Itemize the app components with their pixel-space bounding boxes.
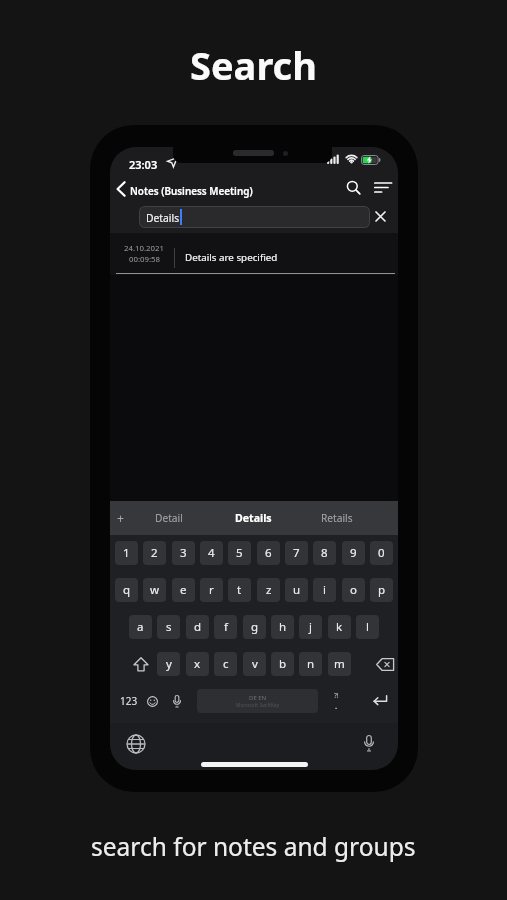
staticText: s [166, 619, 172, 635]
button[interactable]: q [115, 578, 138, 602]
staticText: a [137, 619, 144, 635]
button[interactable]: m [328, 652, 351, 676]
staticText: 8 [321, 545, 328, 561]
button[interactable]: r [200, 578, 223, 602]
staticText: g [251, 619, 259, 635]
button[interactable] [354, 729, 383, 758]
staticText: 5 [236, 545, 243, 561]
button[interactable]: 6 [257, 541, 280, 565]
staticText: 3 [180, 545, 187, 561]
button[interactable]: 8 [313, 541, 336, 565]
button[interactable] [112, 177, 130, 201]
button[interactable]: 4 [200, 541, 223, 565]
staticText: o [350, 582, 357, 598]
button[interactable] [368, 652, 398, 676]
staticText: l [366, 619, 369, 635]
button[interactable]: 9 [342, 541, 365, 565]
staticText: 123 [120, 694, 138, 708]
staticText: c [223, 656, 229, 672]
staticText: z [266, 582, 272, 598]
button[interactable]: v [243, 652, 266, 676]
button[interactable]: i [313, 578, 336, 602]
button[interactable]: 0 [370, 541, 393, 565]
staticText: Details [235, 511, 272, 525]
staticText: 00:09:58 [129, 254, 160, 265]
button[interactable]: h [271, 615, 294, 639]
button[interactable] [144, 689, 161, 713]
staticText: n [307, 656, 315, 672]
staticText: Search [190, 39, 317, 91]
staticText: x [194, 656, 201, 672]
button[interactable]: Details [193, 506, 313, 530]
button[interactable]: f [214, 615, 237, 639]
button[interactable]: c [214, 652, 237, 676]
button[interactable]: z [257, 578, 280, 602]
staticText: DE EN [249, 694, 267, 702]
staticText: Details are specified [185, 251, 278, 264]
button[interactable]: Retails [277, 506, 397, 530]
staticText: . [335, 700, 338, 711]
button[interactable] [372, 179, 394, 195]
button[interactable]: + [113, 508, 128, 528]
staticText: 23:03 [129, 157, 158, 172]
staticText: 0 [378, 545, 385, 561]
button[interactable] [124, 652, 158, 676]
staticText: j [309, 619, 312, 635]
staticText: Notes (Business Meeting) [130, 184, 253, 197]
button[interactable]: o [342, 578, 365, 602]
button[interactable]: e [172, 578, 195, 602]
staticText: f [224, 619, 228, 635]
staticText: ?! [334, 691, 339, 700]
staticText: 9 [350, 545, 357, 561]
button[interactable]: 7 [285, 541, 308, 565]
button[interactable]: d [186, 615, 209, 639]
button[interactable]: 24.10.2021 [110, 233, 398, 274]
button[interactable]: p [370, 578, 393, 602]
button[interactable]: l [356, 615, 379, 639]
staticText: 4 [208, 545, 215, 561]
button[interactable]: s [157, 615, 180, 639]
button[interactable] [168, 689, 185, 713]
staticText: q [123, 582, 131, 598]
button[interactable]: 1 [115, 541, 138, 565]
button[interactable]: u [285, 578, 308, 602]
button[interactable]: t [228, 578, 251, 602]
button[interactable]: DE EN [197, 689, 318, 713]
staticText: p [378, 582, 386, 598]
button[interactable]: y [157, 652, 180, 676]
button[interactable]: j [299, 615, 322, 639]
button[interactable]: x [186, 652, 209, 676]
staticText: r [209, 582, 214, 598]
button[interactable] [371, 207, 390, 226]
button[interactable]: 5 [228, 541, 251, 565]
staticText: h [279, 619, 287, 635]
button[interactable]: k [328, 615, 351, 639]
staticText: m [334, 656, 345, 672]
button[interactable]: 2 [143, 541, 166, 565]
staticText: 7 [293, 545, 300, 561]
staticText: Detail [155, 511, 183, 525]
staticText: 2 [151, 545, 158, 561]
staticText: Microsoft SwiftKey [236, 702, 280, 709]
staticText: Details [146, 211, 180, 225]
staticText: u [293, 582, 301, 598]
button[interactable]: 3 [172, 541, 195, 565]
button[interactable] [368, 689, 392, 713]
button[interactable]: w [143, 578, 166, 602]
staticText: + [117, 510, 124, 526]
staticText: v [252, 656, 258, 672]
staticText: 6 [265, 545, 272, 561]
button[interactable] [343, 177, 363, 197]
button[interactable] [121, 729, 150, 758]
button[interactable]: n [299, 652, 322, 676]
button[interactable]: g [243, 615, 266, 639]
button[interactable]: 123 [116, 689, 142, 713]
button[interactable]: ?! [326, 689, 346, 713]
staticText: 1 [123, 545, 130, 561]
button[interactable]: b [271, 652, 294, 676]
button[interactable]: a [129, 615, 152, 639]
button[interactable]: Detail [110, 506, 229, 530]
staticText: search for notes and groups [91, 830, 416, 863]
staticText: b [279, 656, 287, 672]
button[interactable]: Details [139, 206, 370, 228]
